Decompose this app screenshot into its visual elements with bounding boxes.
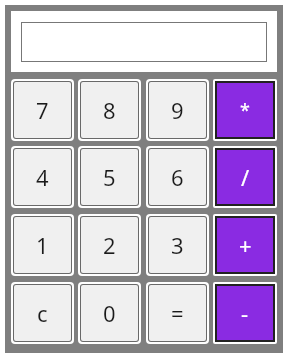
button[interactable]: *: [217, 83, 273, 137]
button[interactable]: =: [149, 285, 206, 341]
staticText: 0: [103, 298, 116, 328]
button[interactable]: 0: [81, 285, 138, 341]
staticText: /: [241, 162, 250, 192]
button[interactable]: /: [217, 150, 273, 204]
staticText: 4: [36, 162, 49, 192]
button[interactable]: +: [217, 218, 273, 272]
staticText: *: [240, 98, 250, 123]
button[interactable]: 2: [81, 217, 138, 273]
staticText: +: [239, 230, 252, 260]
button[interactable]: -: [217, 286, 273, 340]
staticText: =: [171, 298, 184, 328]
staticText: 7: [36, 95, 49, 125]
button[interactable]: 8: [81, 82, 138, 138]
staticText: 5: [103, 162, 116, 192]
button[interactable]: 5: [81, 149, 138, 205]
button[interactable]: [21, 22, 267, 62]
button[interactable]: c: [14, 285, 71, 341]
button[interactable]: 7: [14, 82, 71, 138]
staticText: 2: [103, 230, 116, 260]
button[interactable]: 6: [149, 149, 206, 205]
staticText: c: [37, 298, 48, 328]
staticText: 1: [36, 230, 49, 260]
button[interactable]: 9: [149, 82, 206, 138]
button[interactable]: 1: [14, 217, 71, 273]
staticText: 3: [171, 230, 184, 260]
staticText: 8: [103, 95, 116, 125]
button[interactable]: 4: [14, 149, 71, 205]
staticText: 6: [171, 162, 184, 192]
staticText: -: [241, 298, 249, 328]
staticText: 9: [171, 95, 184, 125]
button[interactable]: 3: [149, 217, 206, 273]
